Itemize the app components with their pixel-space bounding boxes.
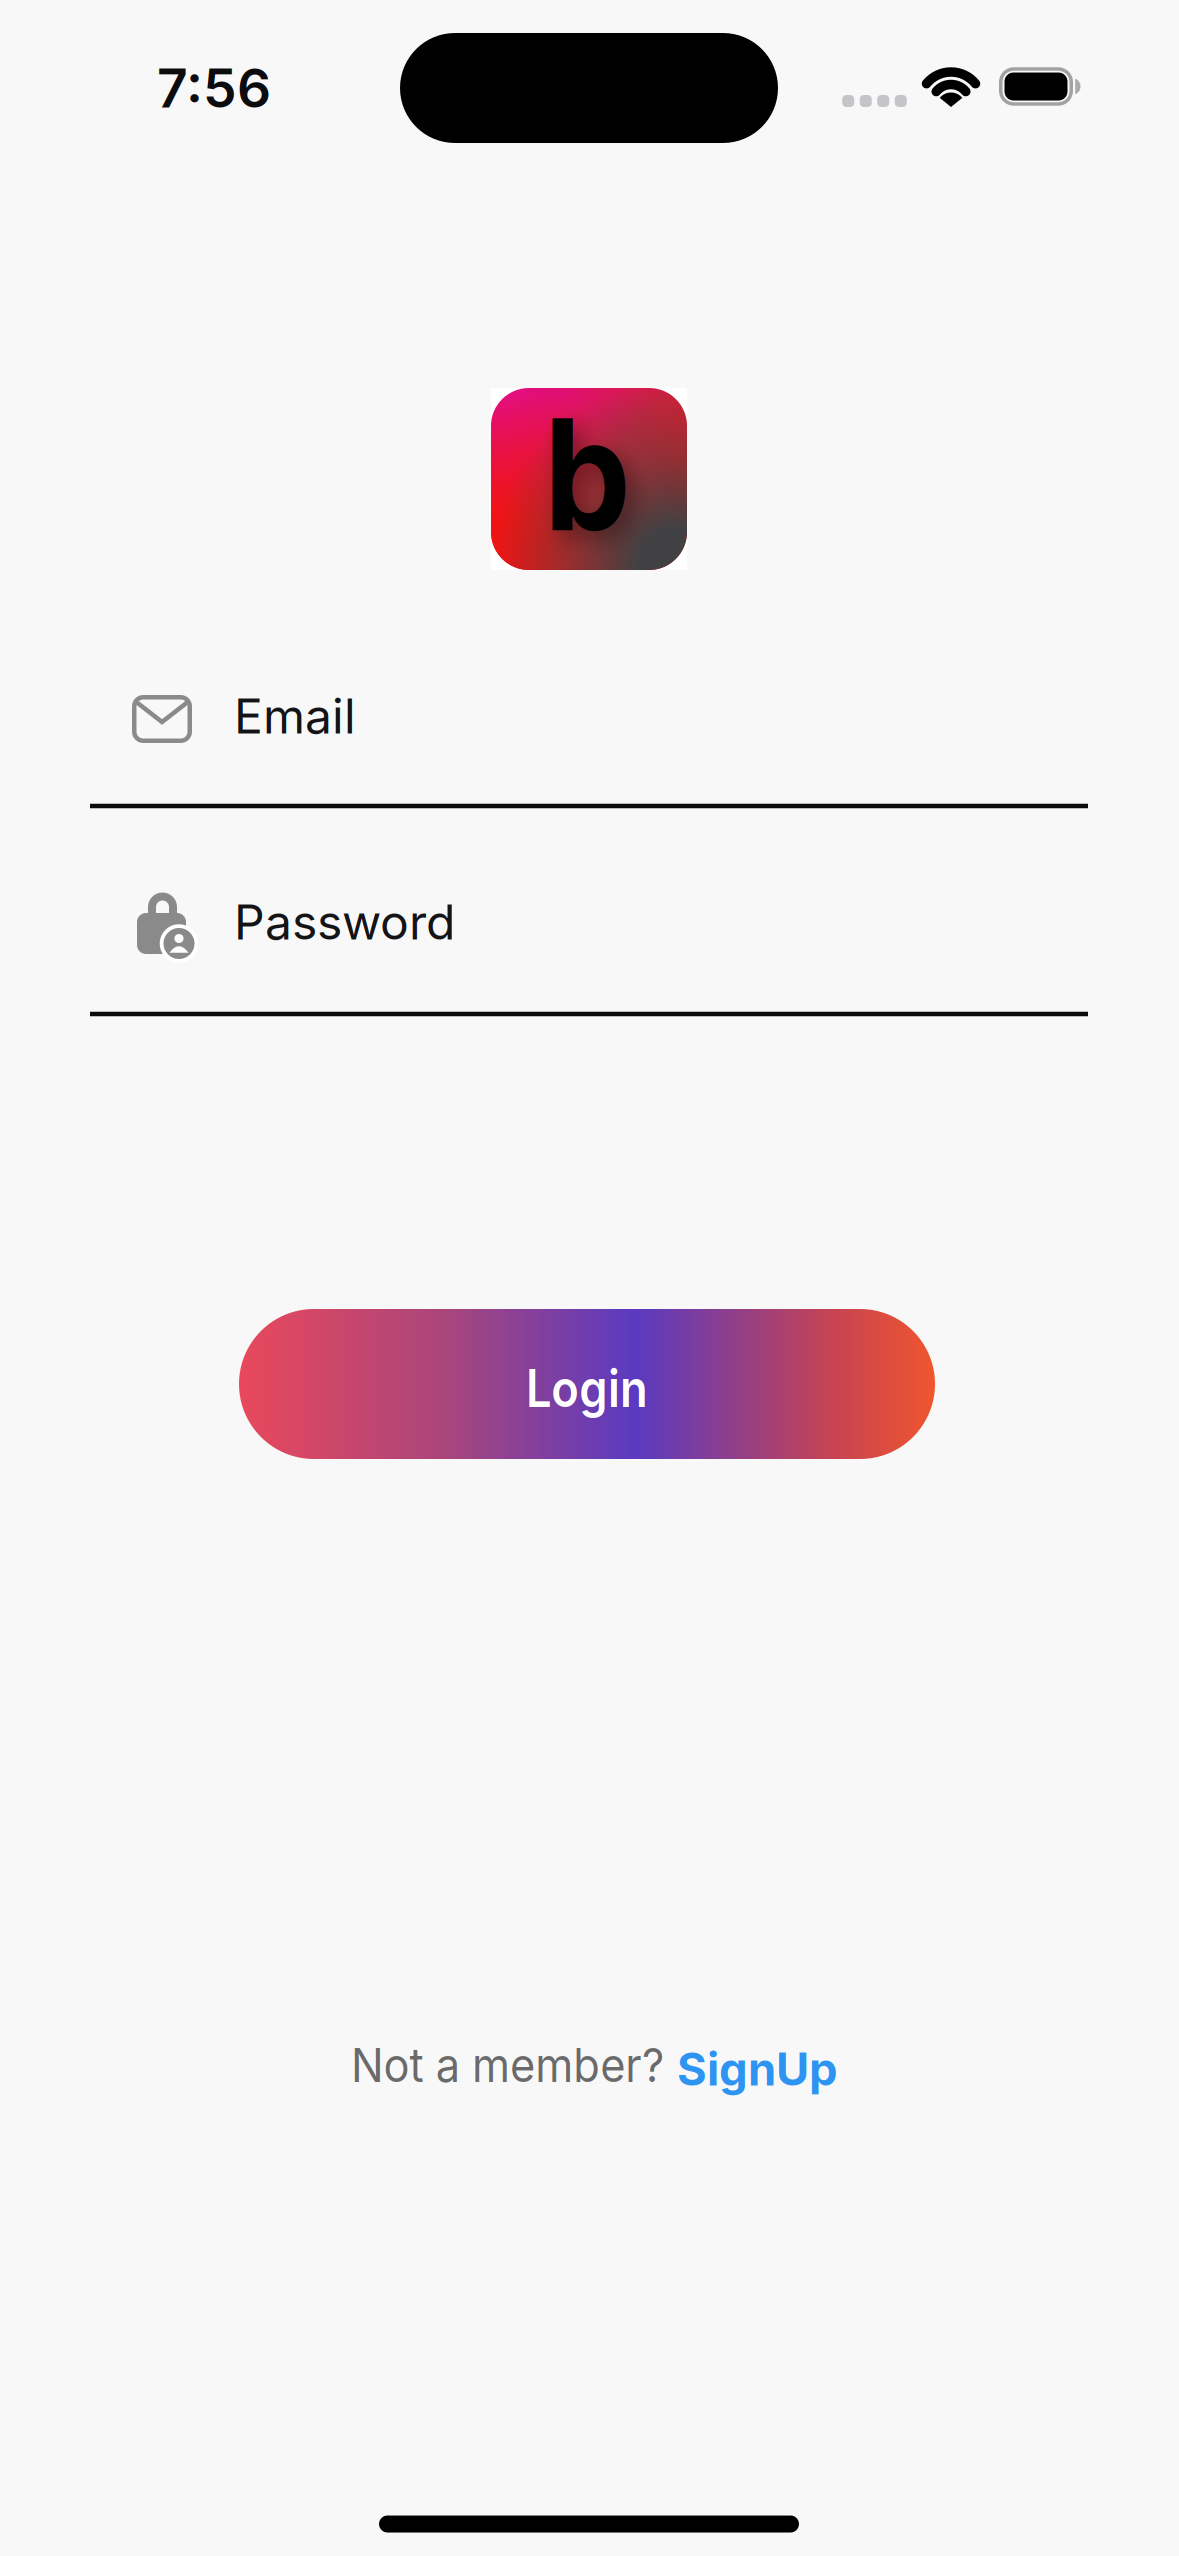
staticText: Email [234, 688, 356, 744]
staticText: 7:56 [157, 56, 271, 119]
staticText: Not a member? [351, 2037, 688, 2093]
staticText: SignUp [677, 2042, 838, 2096]
staticText: b [539, 384, 636, 565]
staticText: Password [234, 894, 455, 950]
button[interactable]: Login [239, 1309, 935, 1459]
staticText: Login [517, 1357, 657, 1419]
button[interactable]: SignUp [677, 2042, 838, 2096]
